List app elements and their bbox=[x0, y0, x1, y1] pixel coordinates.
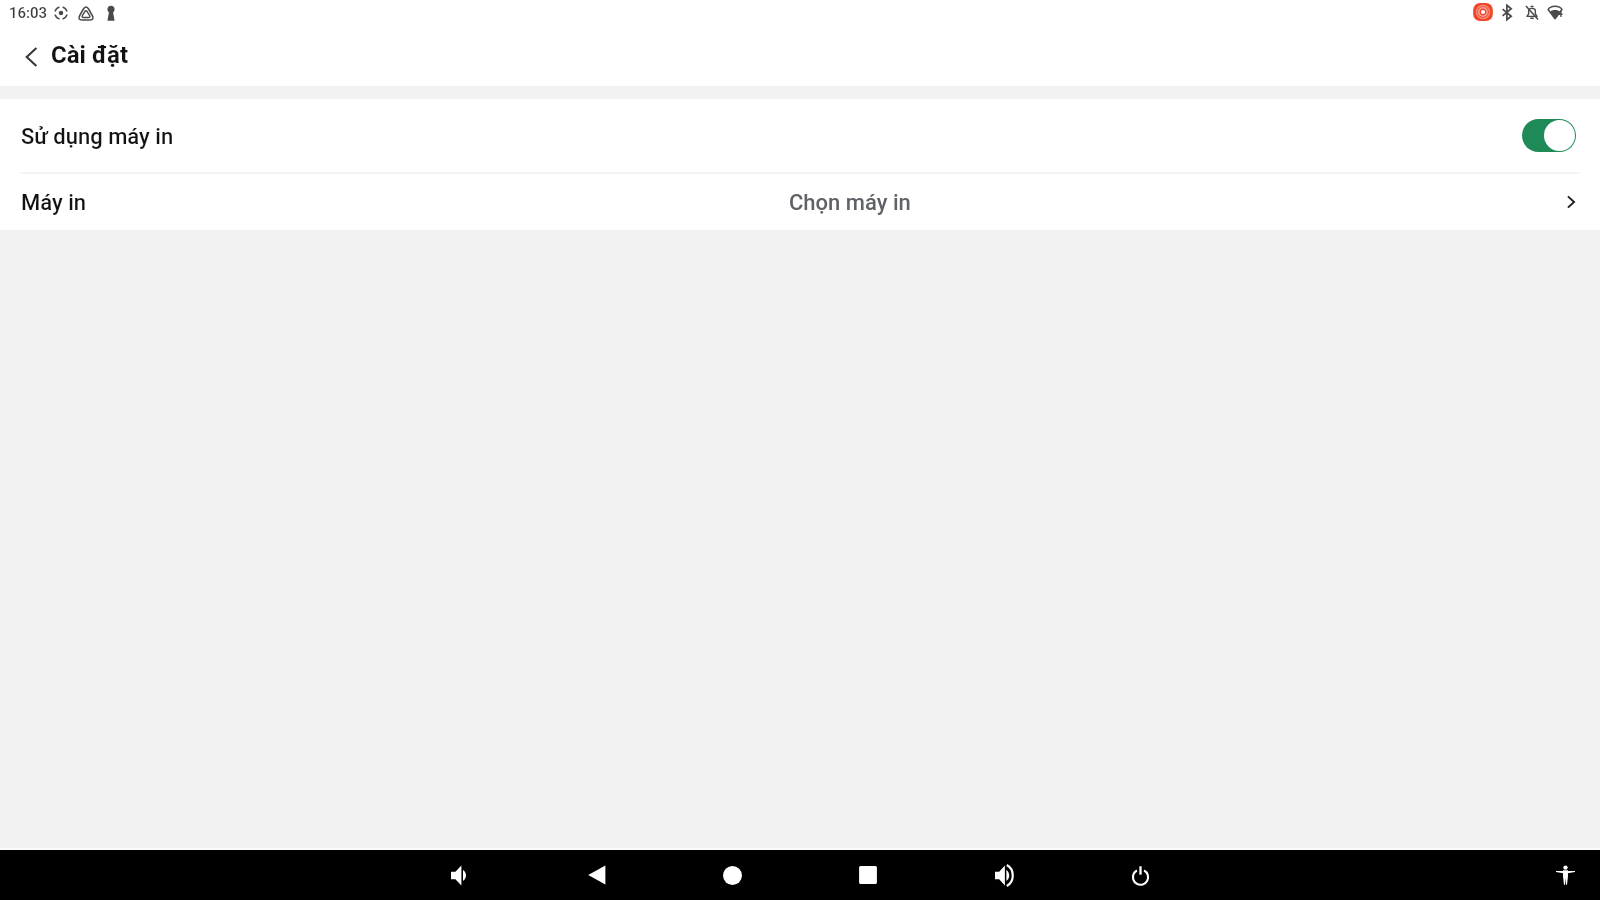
button[interactable]: Accessibility bbox=[1540, 850, 1590, 900]
button[interactable]: Sử dụng máy in bbox=[0, 99, 1600, 172]
button[interactable]: Máy in bbox=[0, 174, 1600, 230]
button[interactable]: Back bbox=[572, 850, 622, 900]
staticText: Máy in bbox=[21, 190, 87, 216]
button[interactable]: Back bbox=[8, 33, 56, 81]
button[interactable]: Home bbox=[707, 850, 757, 900]
button[interactable]: Volume up bbox=[979, 850, 1029, 900]
button[interactable]: Sử dụng máy in bbox=[1522, 119, 1576, 152]
staticText: Sử dụng máy in bbox=[21, 124, 174, 150]
staticText: Chọn máy in bbox=[789, 190, 911, 216]
button[interactable]: Recent apps bbox=[843, 850, 893, 900]
button[interactable]: Volume down bbox=[436, 850, 486, 900]
button[interactable]: Power bbox=[1115, 850, 1165, 900]
staticText: 16:03 bbox=[9, 4, 48, 22]
staticText: Cài đặt bbox=[51, 41, 129, 69]
